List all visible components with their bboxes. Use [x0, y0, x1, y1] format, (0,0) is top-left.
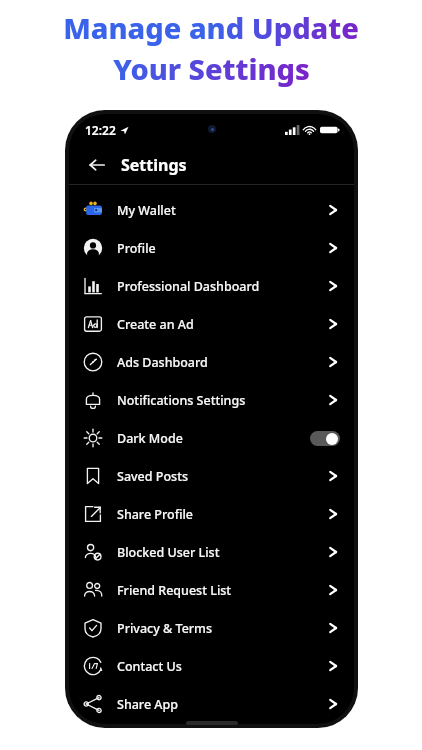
button[interactable]: Notifications Settings: [69, 381, 354, 419]
staticText: Privacy & Terms: [117, 620, 326, 637]
button[interactable]: Ads Dashboard: [69, 343, 354, 381]
staticText: Manage and Update: [63, 8, 359, 47]
button[interactable]: Create an Ad: [69, 305, 354, 343]
button[interactable]: Share App: [69, 685, 354, 723]
button[interactable]: Contact Us: [69, 647, 354, 685]
staticText: My Wallet: [117, 202, 326, 219]
staticText: Ads Dashboard: [117, 354, 326, 371]
staticText: Settings: [121, 154, 187, 176]
staticText: 12:22: [85, 122, 116, 138]
staticText: Your Settings: [113, 49, 310, 88]
staticText: Share App: [117, 696, 326, 713]
button[interactable]: Blocked User List: [69, 533, 354, 571]
button[interactable]: Share Profile: [69, 495, 354, 533]
button[interactable]: Friend Request List: [69, 571, 354, 609]
button[interactable]: Profile: [69, 229, 354, 267]
staticText: Blocked User List: [117, 544, 326, 561]
button[interactable]: My Wallet: [69, 191, 354, 229]
staticText: Profile: [117, 240, 326, 257]
staticText: Notifications Settings: [117, 392, 326, 409]
button[interactable]: Saved Posts: [69, 457, 354, 495]
staticText: Share Profile: [117, 506, 326, 523]
button[interactable]: Dark Mode: [69, 419, 354, 457]
button[interactable]: Back: [83, 151, 111, 179]
staticText: Saved Posts: [117, 468, 326, 485]
button[interactable]: Privacy & Terms: [69, 609, 354, 647]
staticText: Create an Ad: [117, 316, 326, 333]
staticText: Contact Us: [117, 658, 326, 675]
button[interactable]: Professional Dashboard: [69, 267, 354, 305]
staticText: Friend Request List: [117, 582, 326, 599]
staticText: Dark Mode: [117, 430, 310, 447]
button[interactable]: Dark Mode toggle: [310, 431, 340, 446]
staticText: Professional Dashboard: [117, 278, 326, 295]
